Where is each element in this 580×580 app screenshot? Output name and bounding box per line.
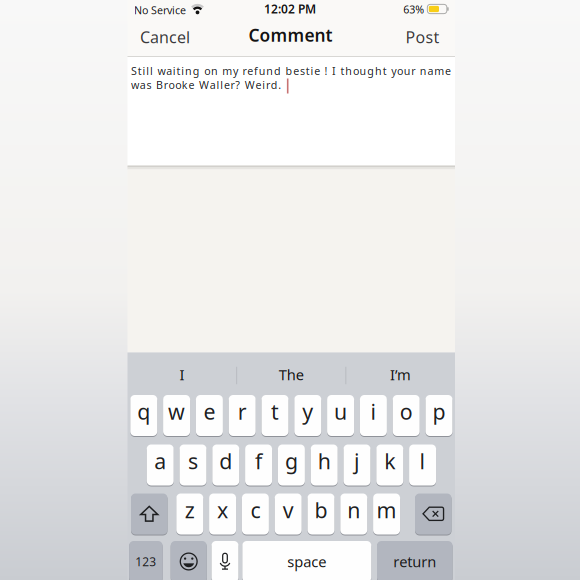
button[interactable]: n [340, 493, 367, 535]
staticText: Still waiting on my refund bestie ! I th… [131, 64, 451, 78]
button[interactable]: q [130, 394, 157, 436]
staticText: m [377, 496, 397, 524]
staticText: l [420, 447, 426, 475]
button[interactable]: i [360, 394, 387, 436]
button[interactable]: Shift [131, 493, 167, 535]
button[interactable]: x [209, 493, 236, 535]
button[interactable]: Delete [415, 493, 451, 535]
staticText: a [154, 447, 166, 475]
button[interactable]: z [176, 493, 203, 535]
button[interactable]: r [229, 394, 256, 436]
button[interactable]: l [409, 444, 436, 486]
staticText: No Service [134, 3, 186, 17]
staticText: w [168, 397, 185, 426]
staticText: space [287, 552, 326, 571]
button[interactable]: Post [397, 20, 447, 54]
staticText: o [400, 397, 413, 426]
button[interactable]: I [128, 360, 236, 390]
button[interactable]: v [275, 493, 302, 535]
button[interactable]: c [242, 493, 269, 535]
button[interactable]: Cancel [133, 20, 197, 54]
button[interactable]: m [373, 493, 400, 535]
staticText: was Brooke Waller? Weird. [131, 78, 281, 92]
button[interactable]: d [212, 444, 239, 486]
staticText: z [185, 496, 195, 524]
button[interactable]: 123 [129, 540, 163, 580]
staticText: return [393, 552, 436, 571]
button[interactable]: a [147, 444, 174, 486]
button[interactable]: Emoji [171, 540, 207, 580]
staticText: x [217, 496, 228, 524]
button[interactable]: space [242, 540, 371, 580]
staticText: q [137, 397, 150, 426]
staticText: I [180, 365, 185, 384]
staticText: k [384, 447, 395, 475]
button[interactable]: p [425, 394, 452, 436]
staticText: b [314, 496, 327, 524]
button[interactable]: I’m [347, 360, 454, 390]
staticText: c [250, 496, 260, 524]
staticText: Cancel [140, 26, 190, 48]
button[interactable]: u [327, 394, 354, 436]
button[interactable]: t [261, 394, 288, 436]
button[interactable]: g [278, 444, 305, 486]
staticText: t [271, 397, 279, 426]
staticText: s [188, 447, 198, 475]
staticText: g [285, 447, 298, 475]
button[interactable]: e [196, 394, 223, 436]
button[interactable]: s [179, 444, 206, 486]
staticText: h [318, 447, 331, 475]
staticText: d [219, 447, 232, 475]
staticText: j [354, 447, 360, 475]
staticText: p [432, 397, 445, 426]
staticText: Post [405, 26, 439, 48]
staticText: u [334, 397, 347, 426]
button[interactable]: h [311, 444, 338, 486]
staticText: n [347, 496, 360, 524]
button[interactable]: o [393, 394, 420, 436]
staticText: 12:02 PM [264, 1, 316, 17]
staticText: i [370, 397, 376, 426]
staticText: The [279, 365, 304, 384]
button[interactable]: Dictation [211, 540, 238, 580]
staticText: e [203, 397, 215, 426]
button[interactable]: return [377, 540, 452, 580]
staticText: f [255, 447, 262, 475]
button[interactable]: j [343, 444, 370, 486]
button[interactable]: f [245, 444, 272, 486]
staticText: r [238, 397, 247, 426]
button[interactable]: k [376, 444, 403, 486]
button[interactable]: y [294, 394, 321, 436]
staticText: Comment [248, 23, 332, 46]
staticText: I’m [390, 365, 411, 384]
button[interactable]: The [238, 360, 345, 390]
staticText: 123 [135, 553, 156, 569]
button[interactable]: w [163, 394, 190, 436]
staticText: y [302, 397, 313, 426]
staticText: 63% [403, 2, 424, 16]
staticText: v [283, 496, 294, 524]
button[interactable]: b [307, 493, 334, 535]
